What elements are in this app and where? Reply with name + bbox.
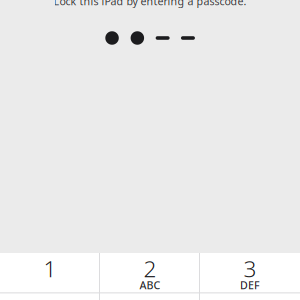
staticText: 2 xyxy=(143,253,156,283)
staticText: DEF xyxy=(240,278,260,292)
staticText: 3 xyxy=(243,253,256,283)
staticText: ABC xyxy=(139,278,160,292)
button[interactable]: 1 xyxy=(0,253,100,292)
button[interactable]: 3 DEF xyxy=(200,253,300,292)
staticText: 1 xyxy=(43,253,56,283)
staticText: Lock this iPad by entering a passcode. xyxy=(53,0,246,8)
button[interactable]: 2 ABC xyxy=(100,253,200,292)
